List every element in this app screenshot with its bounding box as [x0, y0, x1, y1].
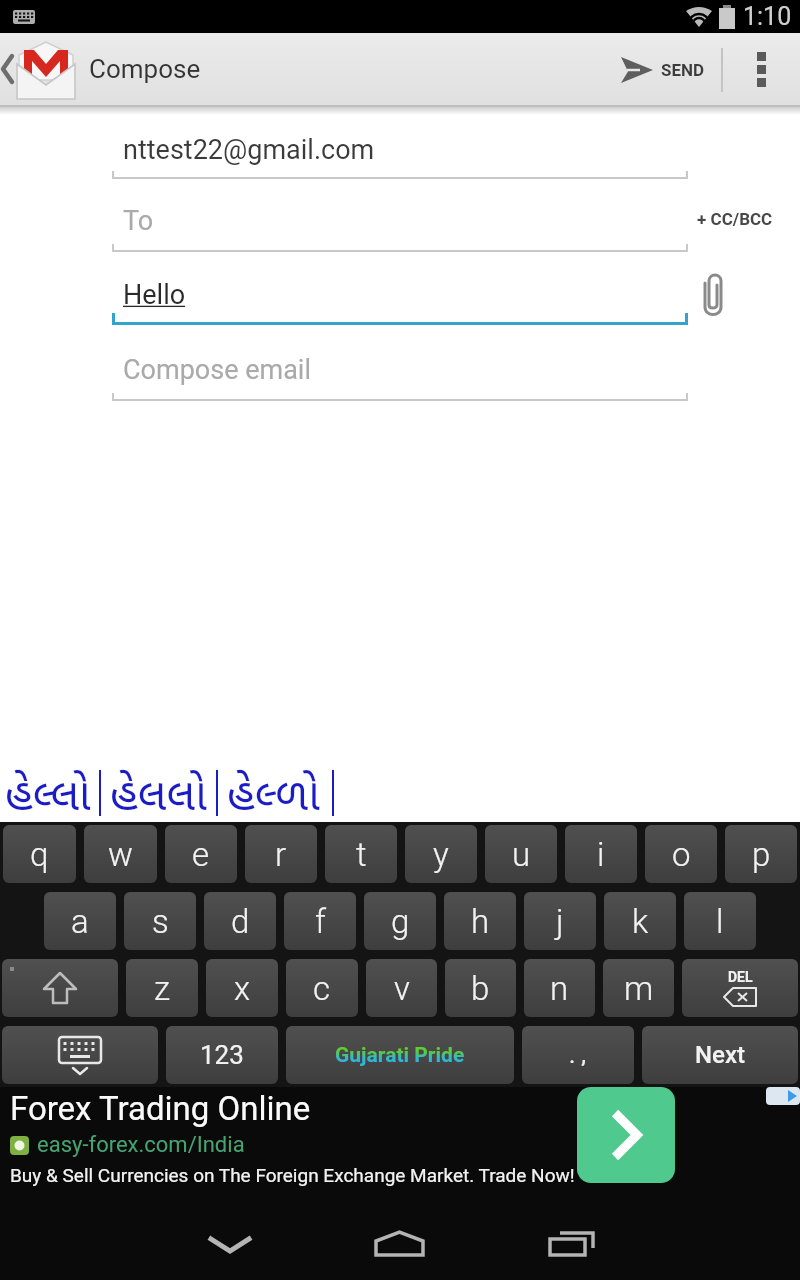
button[interactable]: l	[684, 892, 756, 950]
staticText: t	[356, 835, 367, 874]
button[interactable]: Gujarati Pride	[286, 1026, 514, 1084]
staticText: f	[315, 902, 326, 941]
staticText: r	[275, 835, 287, 874]
staticText: v	[394, 969, 410, 1008]
staticText: w	[108, 835, 133, 874]
staticText: DEL	[728, 969, 753, 985]
staticText: SEND	[661, 60, 705, 80]
button[interactable]: i	[565, 825, 637, 883]
staticText: b	[471, 969, 490, 1008]
staticText: l	[716, 902, 724, 941]
button[interactable]	[460, 1220, 580, 1280]
button[interactable]: c	[286, 959, 358, 1017]
staticText: k	[632, 902, 649, 941]
button[interactable]: x	[206, 959, 278, 1017]
button[interactable]: u	[485, 825, 557, 883]
button[interactable]: m	[603, 959, 674, 1017]
button[interactable]: k	[604, 892, 676, 950]
staticText: 1:10	[743, 2, 792, 31]
staticText: x	[234, 969, 251, 1008]
button[interactable]: SEND	[615, 57, 711, 83]
button[interactable]: n	[524, 959, 595, 1017]
staticText: Forex Trading Online	[10, 1089, 311, 1128]
button[interactable]: d	[204, 892, 276, 950]
button[interactable]: e	[165, 825, 237, 883]
staticText: s	[152, 902, 169, 941]
staticText: . ,	[569, 1041, 587, 1069]
staticText: u	[512, 835, 531, 874]
button[interactable]: r	[245, 825, 317, 883]
button[interactable]	[700, 273, 726, 321]
button[interactable]	[723, 38, 800, 101]
button[interactable]: . ,	[522, 1026, 634, 1084]
button[interactable]: Next	[642, 1026, 798, 1084]
button[interactable]: b	[445, 959, 516, 1017]
button[interactable]	[577, 1087, 675, 1183]
button[interactable]: o	[645, 825, 717, 883]
staticText: q	[30, 835, 49, 874]
button[interactable]: w	[84, 825, 157, 883]
staticText: p	[752, 835, 771, 874]
button[interactable]: s	[124, 892, 196, 950]
button[interactable]: હેલ્લો	[5, 763, 91, 822]
button[interactable]: હેલલો	[110, 763, 207, 822]
staticText: z	[154, 969, 171, 1008]
staticText: Next	[695, 1041, 746, 1069]
button[interactable]: v	[366, 959, 437, 1017]
button[interactable]: p	[725, 825, 797, 883]
staticText: a	[71, 902, 89, 941]
button[interactable]: easy-forex.com/India	[37, 1132, 245, 1158]
staticText: nttest22@gmail.com	[123, 134, 375, 166]
staticText: To	[123, 205, 154, 237]
staticText: Hello	[123, 279, 186, 311]
button[interactable]: + CC/BCC	[697, 209, 773, 229]
button[interactable]: DEL	[682, 959, 798, 1017]
button[interactable]: z	[126, 959, 198, 1017]
staticText: o	[672, 835, 691, 874]
button[interactable]	[340, 1220, 460, 1280]
button[interactable]	[2, 959, 118, 1017]
button[interactable]: a	[44, 892, 116, 950]
button[interactable]	[2, 1026, 158, 1084]
staticText: j	[556, 902, 564, 941]
staticText: Gujarati Pride	[335, 1043, 465, 1068]
button[interactable]: હેલ્ળો	[227, 763, 320, 822]
staticText: Compose email	[123, 354, 311, 386]
staticText: c	[313, 969, 331, 1008]
staticText: i	[597, 835, 605, 874]
staticText: 123	[200, 1040, 244, 1070]
staticText: g	[391, 902, 410, 941]
staticText: y	[433, 835, 449, 874]
staticText: e	[192, 835, 210, 874]
staticText: n	[550, 969, 569, 1008]
button[interactable]: g	[364, 892, 436, 950]
button[interactable]: f	[284, 892, 356, 950]
staticText: h	[471, 902, 490, 941]
button[interactable]: t	[325, 825, 397, 883]
button[interactable]: h	[444, 892, 516, 950]
staticText: Compose	[89, 54, 201, 84]
button[interactable]: y	[405, 825, 477, 883]
staticText: m	[624, 969, 654, 1008]
staticText: d	[231, 902, 250, 941]
staticText: Buy & Sell Currencies on The Foreign Exc…	[10, 1164, 575, 1186]
button[interactable]: q	[3, 825, 76, 883]
button[interactable]	[220, 1220, 340, 1280]
button[interactable]: 123	[166, 1026, 278, 1084]
button[interactable]: Compose	[17, 38, 201, 100]
button[interactable]: j	[524, 892, 596, 950]
